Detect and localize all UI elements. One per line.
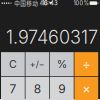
button[interactable]: 7: [1, 77, 25, 100]
button[interactable]: 8: [25, 77, 49, 100]
staticText: C: [9, 58, 17, 71]
button[interactable]: %: [50, 52, 74, 76]
staticText: ×: [82, 81, 90, 96]
staticText: 8: [34, 82, 41, 96]
staticText: 4G: [39, 0, 47, 7]
staticText: +/−: [30, 59, 45, 69]
staticText: ÷: [82, 56, 90, 72]
button[interactable]: +/−: [25, 52, 49, 76]
staticText: 16:43: [42, 0, 58, 7]
staticText: 中国移动: [14, 0, 38, 7]
staticText: 100%: [73, 0, 88, 7]
staticText: %: [57, 58, 67, 71]
button[interactable]: ×: [74, 77, 98, 100]
button[interactable]: C: [1, 52, 25, 76]
staticText: 1.97460317: [6, 26, 98, 48]
button[interactable]: ÷: [74, 52, 98, 76]
button[interactable]: 9: [50, 77, 74, 100]
staticText: 9: [58, 82, 65, 96]
staticText: 7: [9, 82, 16, 96]
